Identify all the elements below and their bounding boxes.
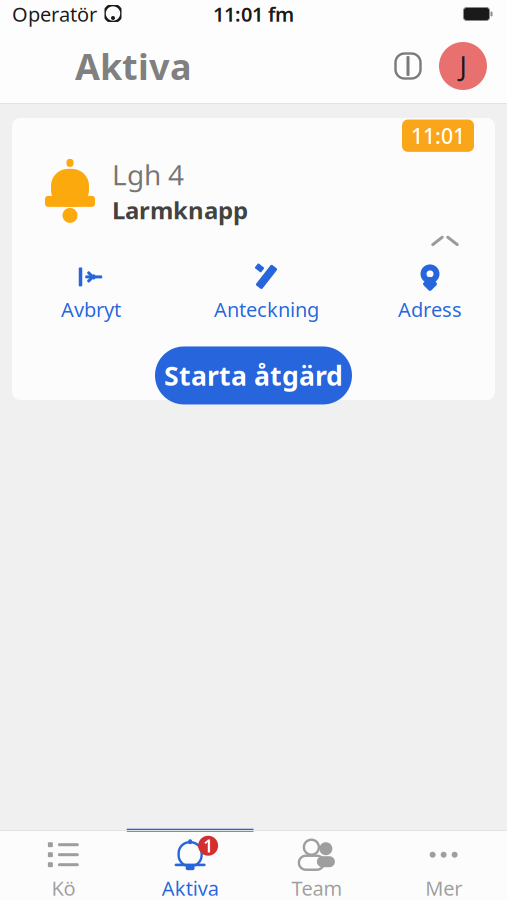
staticText: Operatör	[12, 1, 97, 27]
button[interactable]: Anteckning	[214, 262, 319, 324]
button[interactable]: Fäll ihop	[425, 228, 465, 254]
button[interactable]: Profil	[431, 42, 507, 90]
staticText: Avbryt	[61, 296, 121, 322]
staticText: Lgh 4	[112, 156, 184, 193]
staticText: J	[459, 48, 466, 84]
button[interactable]: 1	[127, 829, 254, 900]
staticText: 11:01 fm	[213, 1, 294, 27]
staticText: Team	[291, 875, 342, 900]
staticText: Kö	[51, 875, 75, 900]
staticText: 1	[203, 834, 213, 857]
staticText: Aktiva	[162, 875, 219, 900]
staticText: Aktiva	[75, 42, 192, 90]
staticText: Starta åtgärd	[164, 358, 343, 393]
button[interactable]: Mer	[380, 829, 507, 900]
staticText: Mer	[425, 875, 462, 900]
button[interactable]: Avbryt	[61, 262, 121, 324]
staticText: 11:01	[411, 121, 465, 150]
staticText: Anteckning	[214, 296, 319, 322]
button[interactable]: Starta åtgärd	[155, 346, 352, 404]
button[interactable]: Adress	[398, 262, 462, 324]
staticText: Adress	[398, 296, 462, 322]
staticText: Larmknapp	[112, 194, 248, 226]
button[interactable]: NFC	[385, 43, 431, 89]
button[interactable]: Kö	[0, 829, 127, 900]
button[interactable]: Team	[253, 829, 380, 900]
